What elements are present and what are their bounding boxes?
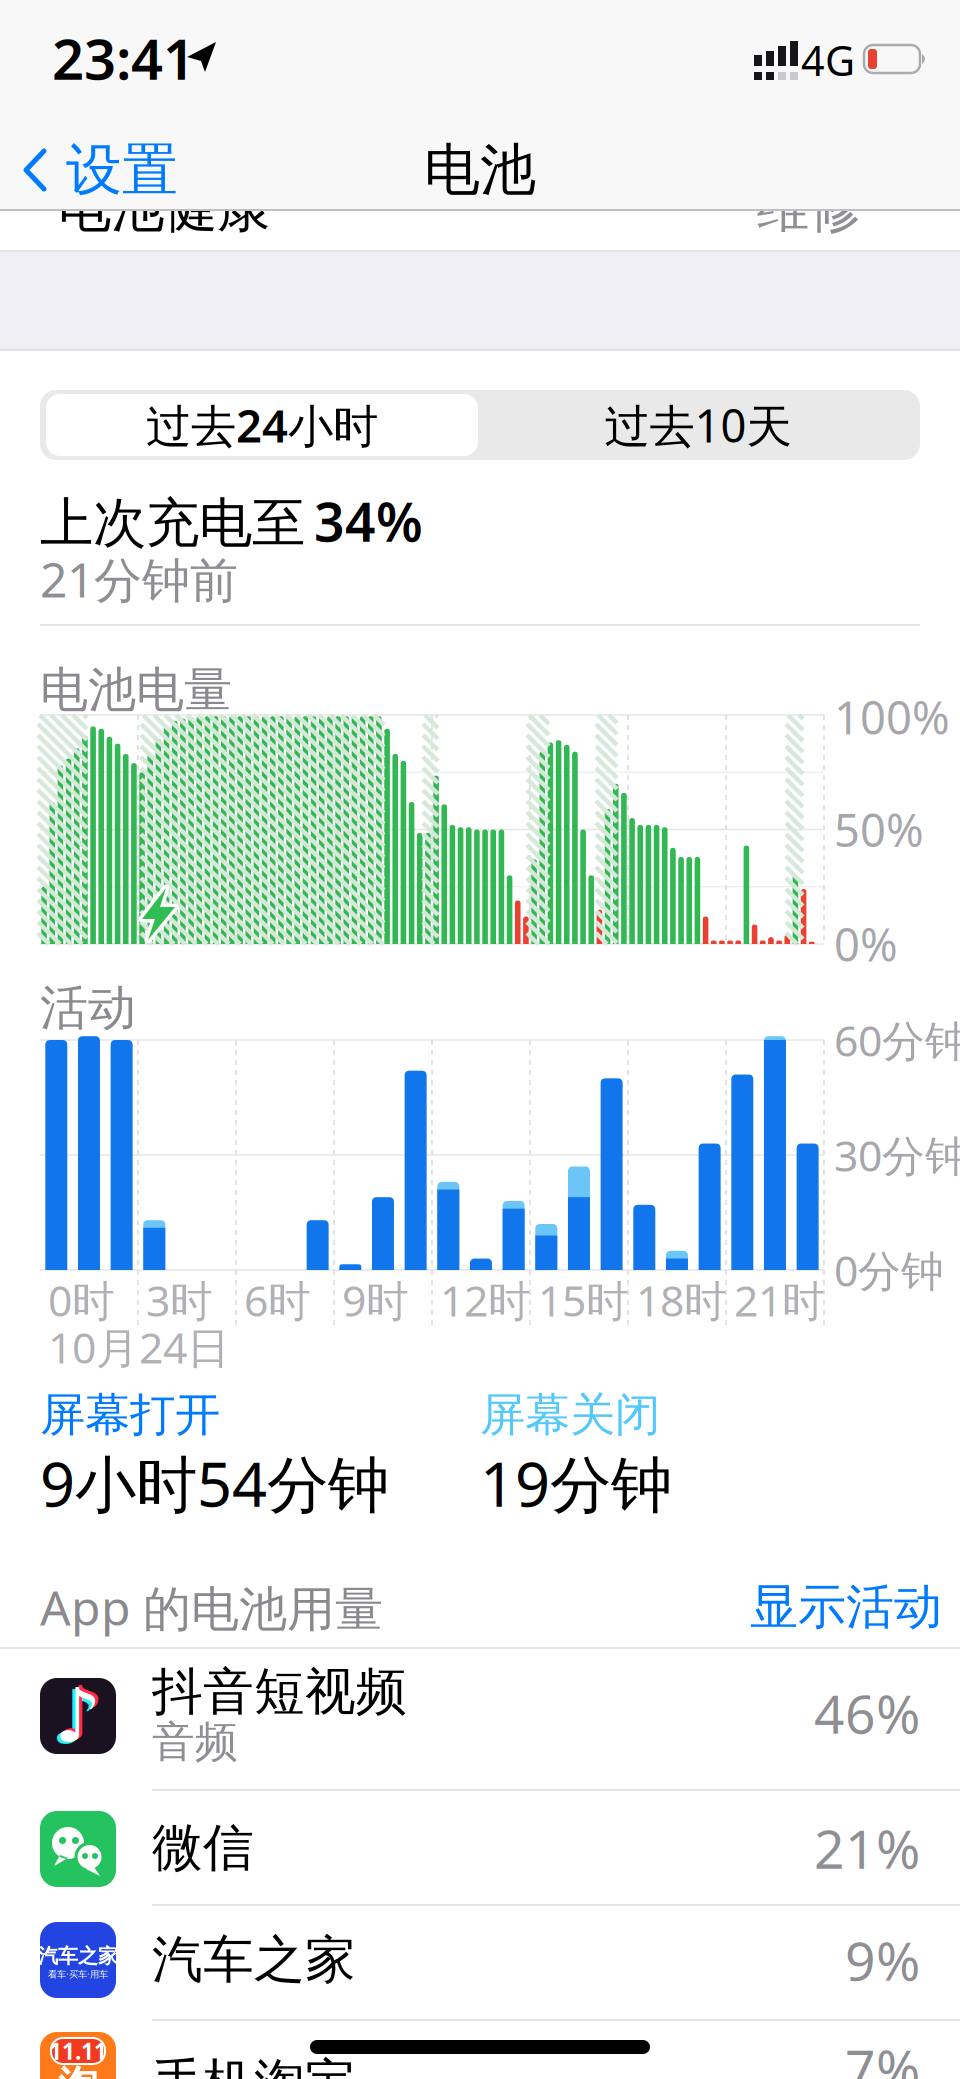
staticText: ♪: [54, 1674, 102, 1758]
staticText: 11.11: [49, 2036, 107, 2066]
button[interactable]: 汽车之家: [0, 1905, 960, 2020]
staticText: 6时: [244, 1272, 311, 1328]
staticText: 50%: [834, 799, 924, 860]
staticText: 10月24日: [48, 1319, 230, 1375]
staticText: 19分钟: [480, 1442, 672, 1524]
staticText: 显示活动: [750, 1577, 942, 1636]
button[interactable]: 过去10天: [480, 390, 916, 460]
staticText: App 的电池用量: [40, 1575, 383, 1639]
staticText: 手机淘宝: [152, 2052, 356, 2079]
staticText: 电池: [424, 136, 536, 204]
staticText: 电池健康: [58, 175, 270, 241]
staticText: 微信: [152, 1817, 254, 1879]
staticText: 21分钟前: [40, 547, 238, 611]
button[interactable]: 显示活动: [736, 1572, 956, 1642]
staticText: 维修: [756, 175, 862, 241]
staticText: 9%: [845, 1925, 920, 1995]
staticText: 12时: [440, 1272, 531, 1328]
button[interactable]: 过去24小时: [44, 390, 480, 460]
staticText: 汽车之家: [152, 1929, 356, 1991]
button[interactable]: 11.11: [0, 2020, 960, 2079]
staticText: 汽车之家: [38, 1944, 118, 1968]
button[interactable]: 电池健康: [0, 171, 960, 251]
staticText: 活动: [40, 978, 136, 1037]
staticText: 淘: [58, 2061, 98, 2079]
staticText: 30分钟: [834, 1127, 960, 1183]
staticText: 4G: [801, 33, 855, 87]
staticText: ♪: [51, 1676, 99, 1760]
staticText: ♪: [57, 1672, 105, 1756]
staticText: 过去10天: [604, 395, 791, 455]
staticText: 设置: [66, 136, 178, 204]
button[interactable]: 微信: [0, 1790, 960, 1905]
staticText: 3时: [146, 1272, 213, 1328]
staticText: 0时: [48, 1272, 115, 1328]
staticText: 屏幕打开: [40, 1387, 220, 1443]
staticText: 过去24小时: [146, 395, 378, 455]
staticText: 抖音短视频: [152, 1661, 407, 1723]
staticText: 21时: [734, 1272, 825, 1328]
staticText: 0分钟: [834, 1242, 944, 1298]
staticText: 23:41: [52, 21, 195, 95]
staticText: 18时: [636, 1272, 727, 1328]
staticText: 音频: [152, 1716, 238, 1768]
staticText: 看车·买车·用车: [48, 1968, 108, 1980]
button[interactable]: ♪: [0, 1650, 960, 1790]
staticText: 7%: [845, 2033, 920, 2079]
staticText: 9小时54分钟: [40, 1442, 389, 1524]
staticText: 100%: [834, 687, 950, 747]
staticText: 46%: [814, 1678, 920, 1748]
staticText: 0%: [834, 914, 898, 974]
staticText: 15时: [538, 1272, 629, 1328]
staticText: 屏幕关闭: [480, 1387, 660, 1443]
staticText: 21%: [814, 1813, 920, 1883]
staticText: 上次充电至 34%: [40, 486, 423, 556]
staticText: 60分钟: [834, 1012, 960, 1068]
staticText: 9时: [342, 1272, 409, 1328]
button[interactable]: 设置: [0, 120, 230, 220]
staticText: 电池电量: [40, 660, 232, 719]
